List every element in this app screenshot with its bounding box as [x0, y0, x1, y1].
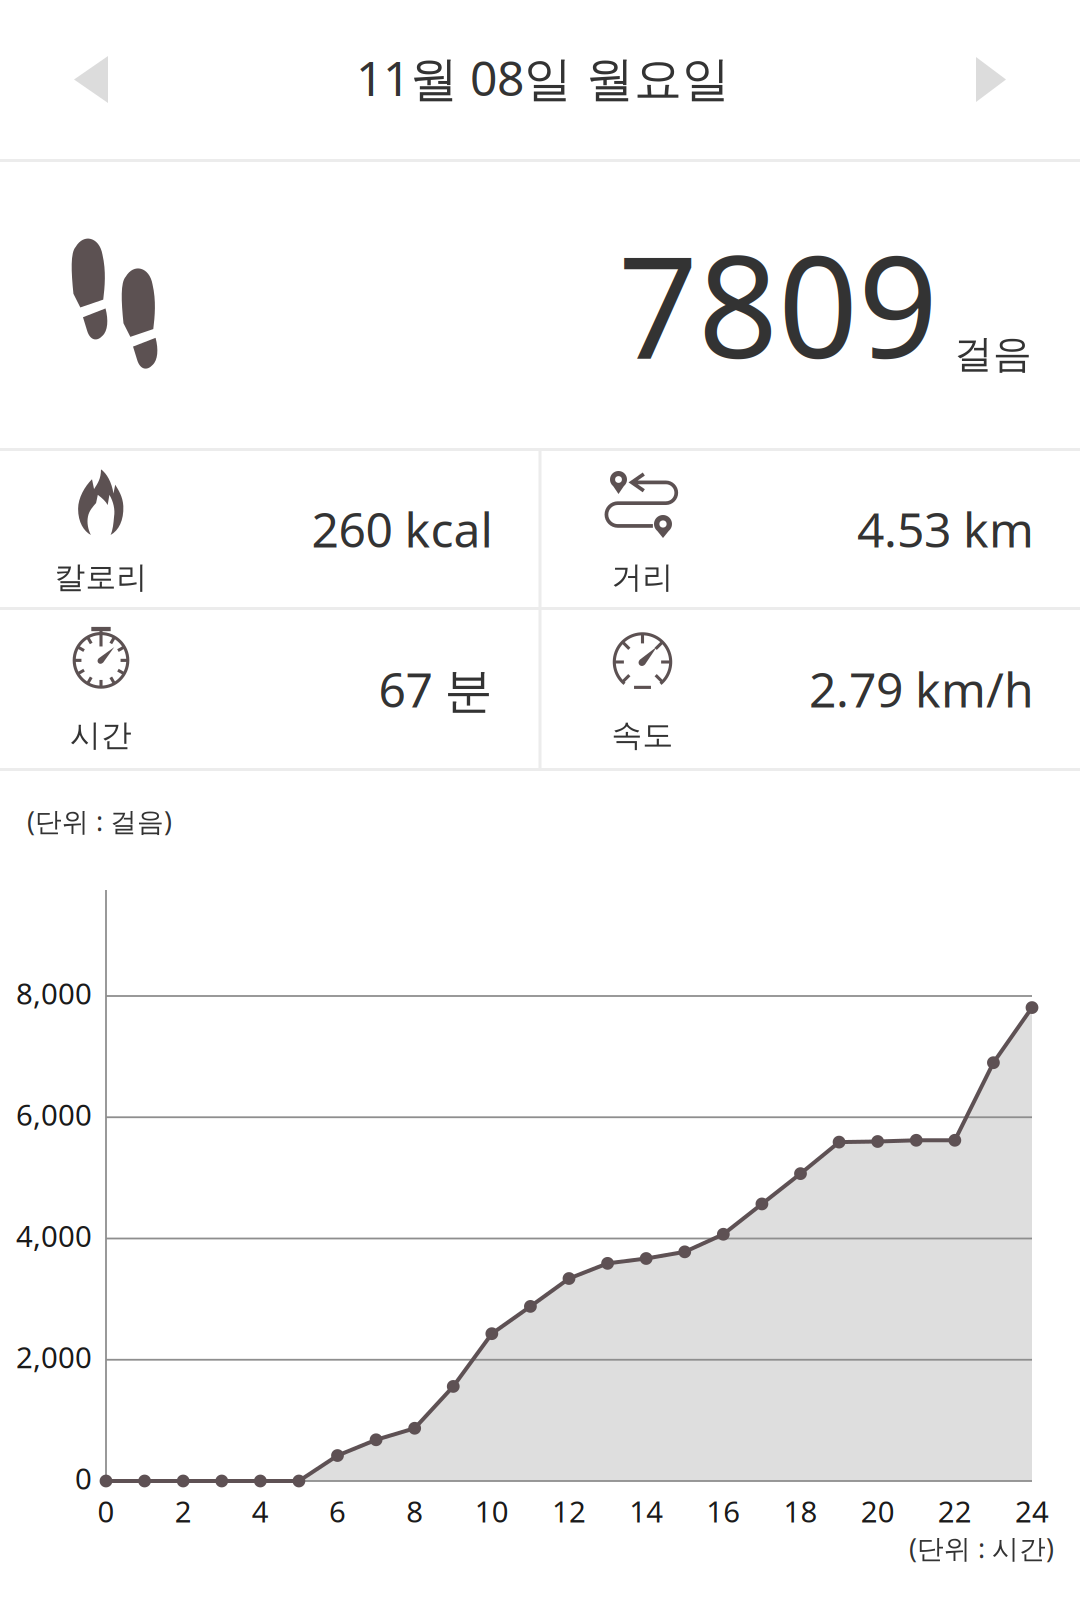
staticText: 10	[475, 1491, 509, 1530]
staticText: 0	[97, 1491, 114, 1530]
staticText: 2	[175, 1491, 192, 1530]
staticText: 260 kcal	[311, 497, 492, 561]
button[interactable]: 거리	[541, 451, 1080, 607]
staticText: 2.79 km/h	[809, 657, 1034, 721]
staticText: 24	[1015, 1491, 1049, 1530]
staticText: 4.53 km	[857, 497, 1034, 561]
staticText: 7809	[618, 211, 938, 397]
staticText: 4	[252, 1491, 269, 1530]
staticText: 18	[783, 1491, 817, 1530]
staticText: 속도	[611, 716, 673, 754]
button[interactable]: 칼로리	[0, 451, 538, 607]
staticText: (단위 : 걸음)	[27, 803, 172, 839]
staticText: (단위 : 시간)	[909, 1530, 1054, 1566]
staticText: 16	[706, 1491, 740, 1530]
staticText: 걸음	[954, 330, 1032, 378]
staticText: 22	[938, 1491, 972, 1530]
staticText: 6,000	[16, 1095, 92, 1134]
staticText: 8,000	[16, 973, 92, 1012]
button[interactable]: 속도	[541, 610, 1080, 768]
staticText: 67 분	[378, 657, 492, 721]
staticText: 2,000	[16, 1337, 92, 1376]
staticText: 시간	[70, 716, 132, 754]
button[interactable]: Steps	[55, 225, 174, 380]
button[interactable]: Previous day	[36, 26, 146, 133]
button[interactable]: 시간	[0, 610, 538, 768]
staticText: 6	[329, 1491, 346, 1530]
staticText: 14	[629, 1491, 663, 1530]
staticText: 4,000	[16, 1216, 92, 1255]
staticText: 8	[406, 1491, 423, 1530]
button[interactable]: Next day	[938, 27, 1044, 132]
staticText: 12	[552, 1491, 586, 1530]
staticText: 11월 08일 월요일	[356, 46, 730, 109]
staticText: 칼로리	[54, 558, 147, 596]
staticText: 0	[75, 1458, 92, 1497]
staticText: 20	[861, 1491, 895, 1530]
staticText: 거리	[611, 558, 673, 596]
